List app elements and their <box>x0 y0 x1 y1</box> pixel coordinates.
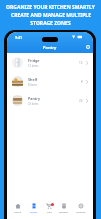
button[interactable]: Settings <box>75 199 87 217</box>
staticText: 23 items <box>28 102 39 106</box>
button[interactable]: Zones <box>29 199 39 217</box>
staticText: Fridge <box>28 58 40 63</box>
staticText: Settings <box>76 210 86 213</box>
staticText: 8 <box>81 80 83 84</box>
button[interactable]: Recipes <box>58 199 69 217</box>
staticText: Pantry <box>28 96 40 101</box>
button[interactable]: Shelf <box>7 72 93 91</box>
staticText: 23 <box>79 99 83 103</box>
staticText: Home <box>14 210 22 213</box>
button[interactable]: Fridge <box>7 53 93 72</box>
staticText: CREATE AND MANAGE MULTIPLE <box>11 12 91 19</box>
staticText: Recipes <box>59 210 68 213</box>
button[interactable]: Home <box>13 199 23 217</box>
staticText: Zones <box>30 210 38 213</box>
staticText: 12 <box>79 61 83 65</box>
staticText: ORGANIZE YOUR KITCHEN SMARTLY <box>6 4 95 11</box>
button[interactable]: Profile <box>86 45 90 49</box>
staticText: Pantry <box>43 45 57 50</box>
staticText: Shelf <box>28 77 38 82</box>
button[interactable]: Pantry <box>7 91 93 110</box>
staticText: 8 items <box>28 83 37 87</box>
staticText: Cart <box>47 210 52 213</box>
staticText: 9:41 <box>15 35 22 40</box>
button[interactable]: Cart <box>45 199 53 217</box>
staticText: 12 items <box>28 64 39 68</box>
staticText: STORAGE ZONES <box>30 20 71 27</box>
